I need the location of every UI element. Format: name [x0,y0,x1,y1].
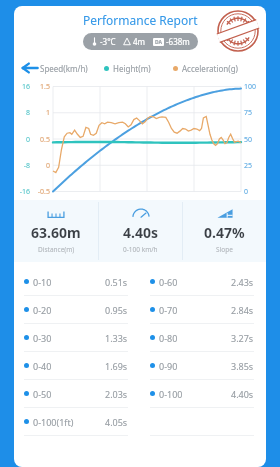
button[interactable]: 0-30 [14,324,140,351]
staticText: 2.84s [231,304,254,316]
staticText: 75 [244,108,266,117]
button[interactable]: 0-90 [140,352,266,379]
button[interactable]: 0.47% [183,200,266,262]
staticText: 3.85s [231,360,254,372]
staticText: 0-40 [33,360,52,372]
button[interactable]: 0-70 [140,296,266,323]
staticText: Distance(m) [38,245,75,254]
staticText: 16 [14,82,30,91]
staticText: 0-90 [159,360,178,372]
staticText: Performance Report [83,12,198,28]
staticText: 50 [244,135,266,144]
other: Valid stamp [216,9,260,53]
staticText: 4.40s [123,223,158,242]
staticText: 1.69s [105,360,128,372]
button[interactable]: 0-40 [14,352,140,379]
staticText: -0.5 [30,187,50,196]
button[interactable]: 0-100(1ft) [14,408,140,435]
button[interactable]: 0-60 [140,268,266,295]
staticText: 25 [244,161,266,170]
staticText: Height(m) [113,63,151,74]
staticText: 0-100 [159,388,183,400]
staticText: -16 [14,187,30,196]
button[interactable]: 63.60m [14,200,98,262]
staticText: 1.5 [30,82,50,91]
staticText: 0-50 [33,388,52,400]
button[interactable]: 4.40s [99,200,182,262]
staticText: 0.51s [105,276,128,288]
staticText: 0-80 [159,332,178,344]
staticText: 8 [14,108,30,117]
staticText: 1 [30,108,50,117]
button[interactable]: 0-80 [140,324,266,351]
staticText: 2.03s [105,388,128,400]
staticText: 4.40s [231,388,254,400]
staticText: 0 [14,135,30,144]
staticText: 0-70 [159,304,178,316]
staticText: -3°C [100,36,116,47]
button[interactable]: 0-20 [14,296,140,323]
staticText: 0-10 [33,276,52,288]
button[interactable]: 0-100 [140,380,266,407]
staticText: 0.5 [30,135,50,144]
staticText: 0-100 km/h [123,245,158,254]
staticText: -8 [14,161,30,170]
button[interactable]: Back [20,58,40,78]
button[interactable]: 0-50 [14,380,140,407]
staticText: 63.60m [31,223,81,242]
staticText: Slope [216,245,233,254]
staticText: 0-20 [33,304,52,316]
staticText: 0-60 [159,276,178,288]
button[interactable]: 0-10 [14,268,140,295]
staticText: DA [155,39,163,46]
staticText: 0.95s [105,304,128,316]
staticText: 100 [244,82,266,91]
staticText: 1.33s [105,332,128,344]
staticText: 2.43s [231,276,254,288]
staticText: 0-100(1ft) [33,416,74,428]
staticText: -638m [166,36,190,47]
staticText: 4.05s [105,416,128,428]
staticText: 3.27s [231,332,254,344]
staticText: 0 [30,161,50,170]
staticText: 0 [244,187,266,196]
staticText: 0-30 [33,332,52,344]
staticText: 4m [133,36,146,47]
staticText: 0.47% [204,223,245,242]
staticText: Speed(km/h) [40,63,88,74]
staticText: Acceleration(g) [182,63,238,74]
